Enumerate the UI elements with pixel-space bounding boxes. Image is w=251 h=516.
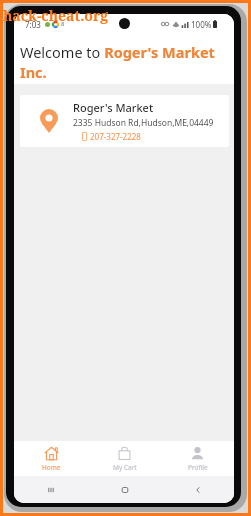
staticText: Roger's Market xyxy=(73,100,154,115)
staticText: 7:03 xyxy=(25,19,41,30)
button[interactable]: Recent apps xyxy=(14,476,88,503)
button[interactable]: Back xyxy=(161,476,234,503)
staticText: 2335 Hudson Rd,Hudson,ME,04449 xyxy=(73,117,214,129)
staticText: Profile xyxy=(188,463,208,472)
staticText: 207-327-2228 xyxy=(90,131,141,142)
button[interactable]: My Cart xyxy=(88,441,161,476)
button[interactable]: Profile xyxy=(161,441,234,476)
staticText: Home xyxy=(42,463,61,472)
staticText: 8 xyxy=(61,20,65,28)
button[interactable]: Home xyxy=(88,476,161,503)
staticText: My Cart xyxy=(113,463,137,472)
staticText: Welcome to Roger's Market Inc. xyxy=(20,42,228,83)
button[interactable]: Roger's Market xyxy=(20,95,229,147)
staticText: 100% xyxy=(191,19,212,30)
staticText: hack-cheat.org xyxy=(3,6,109,25)
button[interactable]: Home xyxy=(14,441,88,476)
